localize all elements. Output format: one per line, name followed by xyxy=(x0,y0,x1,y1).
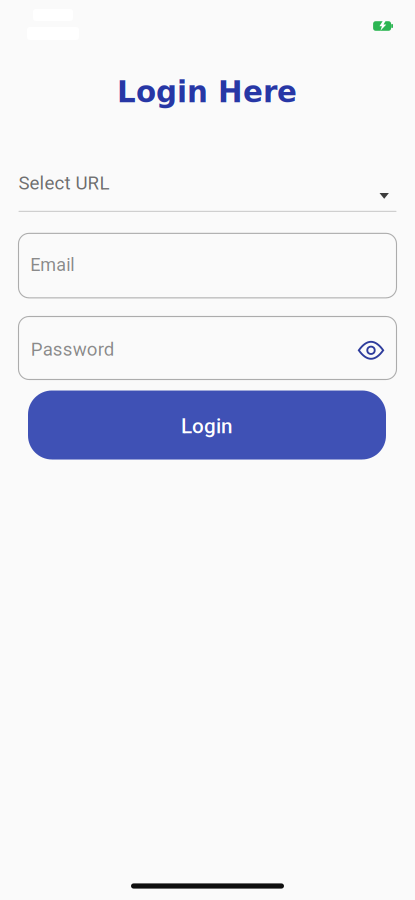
staticText: Select URL xyxy=(18,172,109,194)
button[interactable]: Login xyxy=(28,390,386,459)
button[interactable]: Email xyxy=(18,233,396,298)
button[interactable]: Password xyxy=(18,316,396,379)
staticText: Email xyxy=(30,254,74,275)
button[interactable]: Show password xyxy=(356,337,386,363)
button[interactable]: Select URL xyxy=(18,169,396,212)
staticText: Login xyxy=(181,414,233,438)
staticText: Login Here xyxy=(117,75,297,109)
staticText: Password xyxy=(31,338,115,360)
